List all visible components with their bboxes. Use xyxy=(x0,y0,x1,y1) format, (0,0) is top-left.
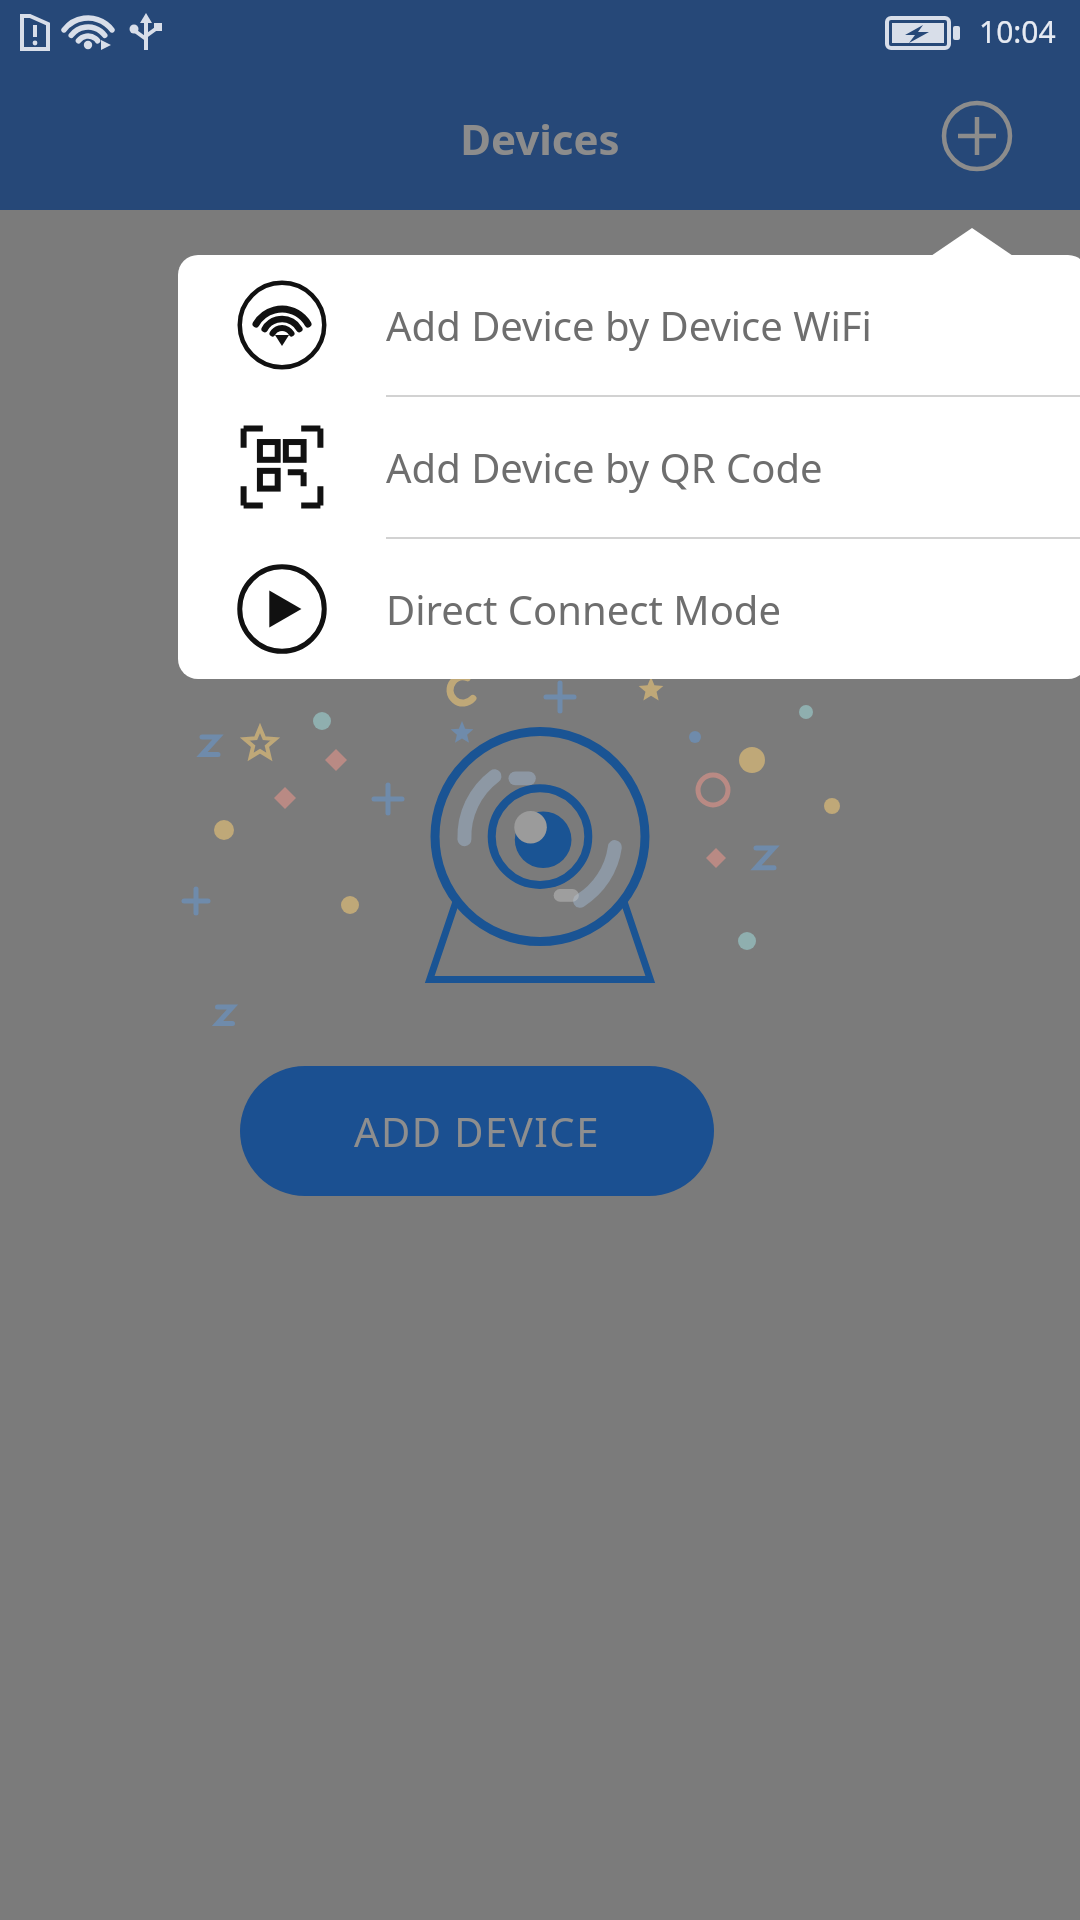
staticText: Devices xyxy=(460,110,620,167)
button[interactable]: Add Device by QR Code xyxy=(178,397,1080,537)
staticText: ADD DEVICE xyxy=(354,1104,600,1158)
button[interactable]: ADD DEVICE xyxy=(240,1066,714,1196)
staticText: Add Device by Device WiFi xyxy=(386,298,872,352)
button[interactable]: Direct Connect Mode xyxy=(178,539,1080,679)
button[interactable]: Add Device by Device WiFi xyxy=(178,255,1080,395)
staticText: Direct Connect Mode xyxy=(386,582,781,636)
staticText: 10:04 xyxy=(979,11,1056,52)
staticText: Add Device by QR Code xyxy=(386,440,823,494)
button[interactable]: Add device xyxy=(925,84,1029,188)
